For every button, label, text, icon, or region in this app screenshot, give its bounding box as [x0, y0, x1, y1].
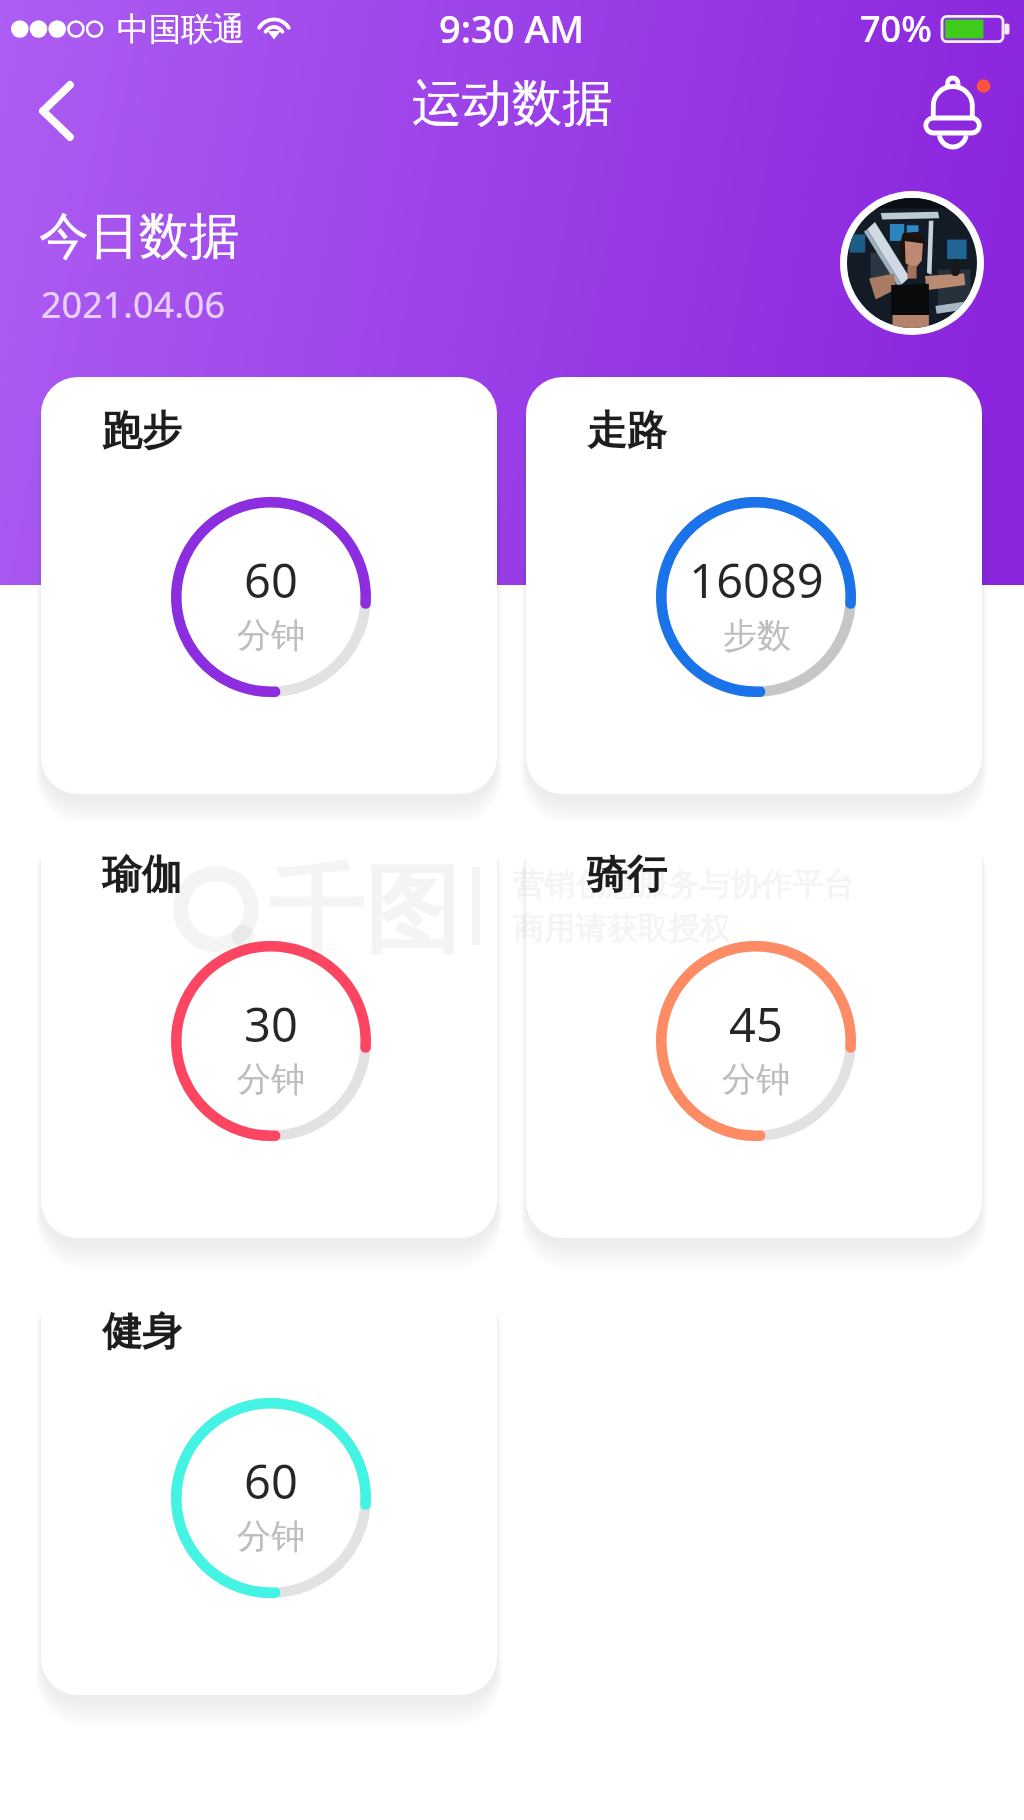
button[interactable]: 跑步 — [41, 377, 497, 794]
staticText: 瑜伽 — [102, 849, 182, 899]
staticText: 16089 — [689, 548, 824, 612]
staticText: 30 — [244, 992, 298, 1056]
staticText: 分钟 — [237, 1515, 305, 1558]
staticText: 营销创意服务与协作平台 — [513, 865, 854, 904]
button[interactable]: 走路 — [526, 377, 982, 794]
staticText: 运动数据 — [412, 72, 612, 135]
staticText: 步数 — [723, 614, 791, 657]
button[interactable]: Back — [8, 66, 98, 156]
button[interactable]: Profile — [840, 191, 984, 335]
staticText: 70% — [860, 4, 932, 53]
button[interactable]: 骑行 — [526, 821, 982, 1238]
staticText: 分钟 — [722, 1058, 790, 1101]
staticText: 骑行 — [587, 849, 667, 899]
staticText: 跑步 — [102, 405, 182, 455]
staticText: 千图 — [268, 851, 460, 972]
staticText: 分钟 — [237, 1058, 305, 1101]
staticText: 中国联通 — [117, 9, 245, 49]
staticText: 商用请获取授权 — [513, 909, 730, 948]
staticText: 60 — [244, 548, 298, 612]
staticText: 60 — [244, 1449, 298, 1513]
staticText: 9:30 AM — [439, 2, 585, 54]
staticText: 2021.04.06 — [41, 280, 226, 329]
button[interactable]: 瑜伽 — [41, 821, 497, 1238]
staticText: 今日数据 — [39, 205, 239, 268]
button[interactable]: 健身 — [41, 1278, 497, 1695]
staticText: 健身 — [102, 1306, 182, 1356]
staticText: 走路 — [587, 405, 667, 455]
staticText: 分钟 — [237, 614, 305, 657]
staticText: 45 — [729, 992, 783, 1056]
button[interactable]: Notifications — [908, 60, 1004, 156]
